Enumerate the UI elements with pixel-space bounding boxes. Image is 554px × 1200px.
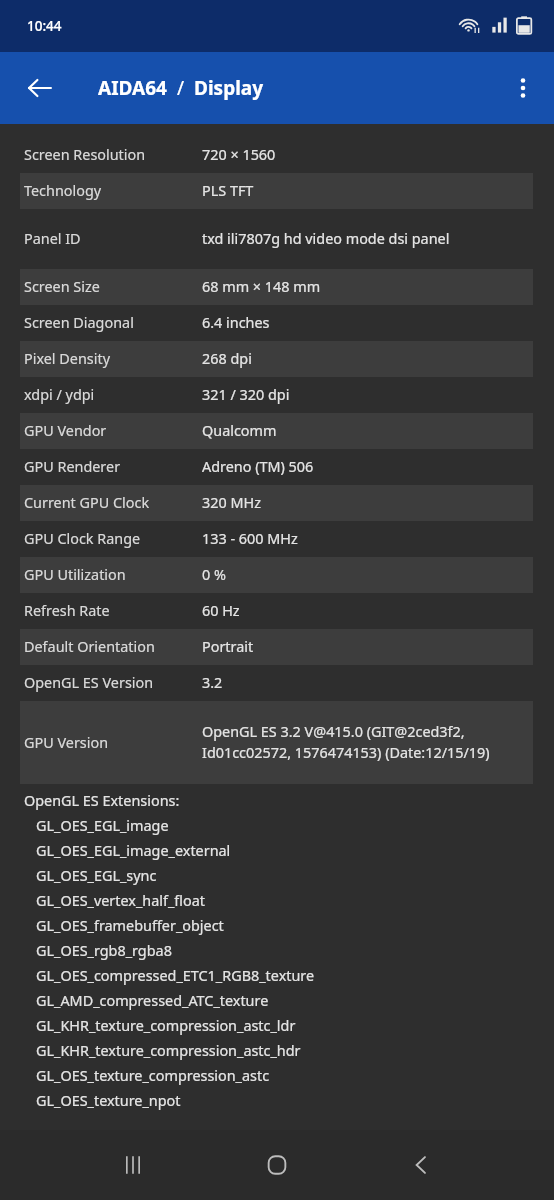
staticText: GL_KHR_texture_compression_astc_ldr	[36, 1016, 296, 1041]
staticText: 320 MHz	[202, 493, 261, 513]
button[interactable]: Back	[12, 60, 68, 116]
button[interactable]: Refresh Rate	[0, 593, 554, 629]
staticText: 321 / 320 dpi	[202, 385, 290, 405]
button[interactable]: GPU Renderer	[0, 449, 554, 485]
staticText: 68 mm × 148 mm	[202, 277, 321, 297]
staticText: 6.4 inches	[202, 313, 270, 333]
button[interactable]: Screen Size	[0, 269, 554, 305]
staticText: GL_OES_EGL_image	[36, 816, 169, 841]
button[interactable]: More options	[496, 61, 550, 115]
button[interactable]: Screen Diagonal	[0, 305, 554, 341]
staticText: GPU Renderer	[24, 457, 121, 477]
staticText: Refresh Rate	[24, 601, 110, 621]
button[interactable]: Default Orientation	[0, 629, 554, 665]
staticText: GPU Version	[24, 733, 109, 753]
staticText: Adreno (TM) 506	[202, 457, 314, 477]
staticText: GL_OES_EGL_sync	[36, 866, 157, 891]
staticText: OpenGL ES 3.2 V@415.0 (GIT@2ced3f2, Id01…	[202, 722, 532, 763]
button[interactable]: Panel ID	[0, 209, 554, 269]
staticText: Screen Resolution	[24, 145, 146, 165]
staticText: GL_KHR_texture_compression_astc_hdr	[36, 1041, 301, 1066]
staticText: Qualcomm	[202, 421, 277, 441]
staticText: xdpi / ydpi	[24, 385, 95, 405]
button[interactable]: GPU Clock Range	[0, 521, 554, 557]
staticText: 3.2	[202, 673, 223, 693]
staticText: GL_OES_rgb8_rgba8	[36, 941, 172, 966]
staticText: GL_OES_framebuffer_object	[36, 916, 224, 941]
staticText: GL_AMD_compressed_ATC_texture	[36, 991, 269, 1016]
button[interactable]: Pixel Density	[0, 341, 554, 377]
button[interactable]: GPU Version	[0, 701, 554, 784]
staticText: 268 dpi	[202, 349, 252, 369]
staticText: 720 × 1560	[202, 145, 276, 165]
staticText: GL_OES_EGL_image_external	[36, 841, 231, 866]
staticText: Panel ID	[24, 229, 81, 249]
button[interactable]: OpenGL ES Version	[0, 665, 554, 701]
button[interactable]: Recent apps	[105, 1137, 161, 1193]
button[interactable]: Current GPU Clock	[0, 485, 554, 521]
staticText: 133 - 600 MHz	[202, 529, 298, 549]
staticText: OpenGL ES Version	[24, 673, 154, 693]
staticText: 10:44	[27, 17, 62, 35]
staticText: AIDA64	[98, 75, 167, 101]
staticText: GL_OES_vertex_half_float	[36, 891, 205, 916]
staticText: Default Orientation	[24, 637, 155, 657]
staticText: Pixel Density	[24, 349, 110, 369]
staticText: Portrait	[202, 637, 254, 657]
staticText: /	[167, 75, 194, 101]
staticText: GPU Clock Range	[24, 529, 141, 549]
staticText: GPU Vendor	[24, 421, 107, 441]
button[interactable]: GPU Utilization	[0, 557, 554, 593]
staticText: 60 Hz	[202, 601, 240, 621]
staticText: GL_OES_compressed_ETC1_RGB8_texture	[36, 966, 315, 991]
staticText: Technology	[24, 181, 102, 201]
staticText: txd ili7807g hd video mode dsi panel	[202, 229, 450, 249]
staticText: 0 %	[202, 565, 226, 585]
staticText: GL_OES_texture_npot	[36, 1091, 181, 1116]
staticText: PLS TFT	[202, 181, 254, 201]
staticText: GL_OES_texture_compression_astc	[36, 1066, 270, 1091]
button[interactable]: GPU Vendor	[0, 413, 554, 449]
staticText: Current GPU Clock	[24, 493, 150, 513]
staticText: Display	[194, 75, 264, 101]
staticText: Screen Size	[24, 277, 100, 297]
button[interactable]: Home	[249, 1137, 305, 1193]
button[interactable]: Screen Resolution	[0, 137, 554, 173]
button[interactable]: xdpi / ydpi	[0, 377, 554, 413]
staticText: GPU Utilization	[24, 565, 126, 585]
staticText: OpenGL ES Extensions:	[24, 791, 180, 811]
button[interactable]: Technology	[0, 173, 554, 209]
button[interactable]: Back	[393, 1137, 449, 1193]
staticText: Screen Diagonal	[24, 313, 134, 333]
